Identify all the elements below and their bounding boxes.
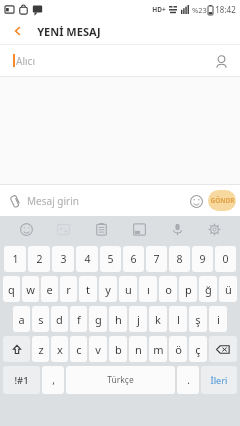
staticText: ı [147, 282, 150, 297]
button[interactable]: 0 [215, 246, 236, 272]
button[interactable]: y [99, 276, 117, 302]
staticText: ğ [205, 282, 212, 297]
staticText: s [38, 312, 44, 327]
staticText: 7 [153, 252, 160, 266]
staticText: 0 [222, 252, 229, 266]
button[interactable]: 1 [4, 246, 26, 272]
button[interactable]: l [169, 306, 187, 332]
staticText: 4 [84, 252, 91, 266]
button[interactable]: 9 [192, 246, 213, 272]
staticText: GÖNDR [210, 196, 235, 205]
button[interactable]: b [109, 336, 127, 362]
button[interactable]: 5 [100, 246, 121, 272]
staticText: o [165, 282, 172, 297]
staticText: %23 [192, 5, 207, 15]
staticText: ü [225, 282, 232, 297]
staticText: w [26, 282, 35, 297]
staticText: c [76, 342, 82, 357]
button[interactable]: ç [189, 336, 207, 362]
button[interactable]: a [13, 306, 30, 332]
button[interactable]: ü [219, 276, 237, 302]
button[interactable]: h [109, 306, 127, 332]
button[interactable]: İleri [201, 366, 237, 394]
button[interactable]: j [129, 306, 147, 332]
staticText: ç [195, 342, 201, 357]
staticText: f [77, 312, 81, 327]
staticText: i [217, 312, 220, 327]
button[interactable]: z [32, 336, 49, 362]
staticText: İleri [210, 374, 228, 386]
staticText: p [185, 282, 192, 297]
button[interactable]: 2 [28, 246, 50, 272]
staticText: b [115, 342, 122, 357]
button[interactable]: GÖNDR [208, 190, 236, 211]
button[interactable]: Back [8, 21, 28, 41]
button[interactable]: ğ [199, 276, 217, 302]
staticText: j [137, 312, 140, 327]
staticText: l [177, 312, 180, 327]
staticText: HD+ [152, 5, 166, 14]
button[interactable]: x [51, 336, 68, 362]
button[interactable]: . [177, 366, 199, 394]
button[interactable]: d [51, 306, 68, 332]
staticText: v [95, 342, 101, 357]
button[interactable]: 6 [123, 246, 144, 272]
button[interactable]: Clipboard [89, 217, 113, 241]
button[interactable]: c [70, 336, 87, 362]
button[interactable]: i [209, 306, 227, 332]
staticText: t [86, 282, 90, 297]
button[interactable]: ı [139, 276, 157, 302]
staticText: Alıcı [16, 54, 35, 68]
button[interactable]: o [159, 276, 177, 302]
button[interactable]: 4 [76, 246, 98, 272]
staticText: YENİ MESAJ [37, 24, 101, 39]
button[interactable]: 7 [146, 246, 167, 272]
staticText: 2 [36, 252, 43, 266]
staticText: Mesaj girin [27, 194, 79, 208]
staticText: 8 [176, 252, 183, 266]
button[interactable]: m [149, 336, 167, 362]
button[interactable]: k [149, 306, 167, 332]
staticText: ş [195, 312, 201, 327]
button[interactable]: Backspace [209, 336, 237, 362]
button[interactable]: ö [169, 336, 187, 362]
button[interactable]: r [60, 276, 77, 302]
button[interactable]: Add recipient from contacts [210, 50, 232, 72]
button[interactable]: q [3, 276, 20, 302]
staticText: m [153, 342, 164, 357]
button[interactable]: u [119, 276, 137, 302]
staticText: Türkçe [107, 374, 134, 386]
button[interactable]: Handwriting [127, 217, 151, 241]
button[interactable]: g [89, 306, 107, 332]
staticText: h [115, 312, 122, 327]
button[interactable]: v [89, 336, 107, 362]
button[interactable]: Emoji [14, 217, 38, 241]
button[interactable]: ş [189, 306, 207, 332]
button[interactable]: n [129, 336, 147, 362]
button[interactable]: 3 [52, 246, 74, 272]
button[interactable]: f [70, 306, 87, 332]
button[interactable]: Attach [3, 190, 25, 212]
button[interactable]: 8 [169, 246, 190, 272]
button[interactable]: Emoji [186, 191, 206, 211]
staticText: 18:42 [215, 4, 236, 15]
staticText: e [46, 282, 53, 297]
staticText: 1 [12, 252, 19, 266]
button[interactable]: Türkçe [66, 366, 175, 394]
staticText: , [52, 373, 55, 387]
button[interactable]: w [22, 276, 39, 302]
button[interactable]: Keyboard settings [202, 217, 226, 241]
button[interactable]: Voice input [165, 217, 189, 241]
staticText: ö [175, 342, 182, 357]
staticText: k [155, 312, 161, 327]
staticText: 5 [107, 252, 114, 266]
staticText: d [56, 312, 63, 327]
button[interactable]: Shift [3, 336, 30, 362]
button[interactable]: Stickers [51, 217, 75, 241]
button[interactable]: t [79, 276, 97, 302]
button[interactable]: s [32, 306, 49, 332]
button[interactable]: !#1 [3, 366, 40, 394]
button[interactable]: , [42, 366, 64, 394]
button[interactable]: p [179, 276, 197, 302]
button[interactable]: e [41, 276, 58, 302]
